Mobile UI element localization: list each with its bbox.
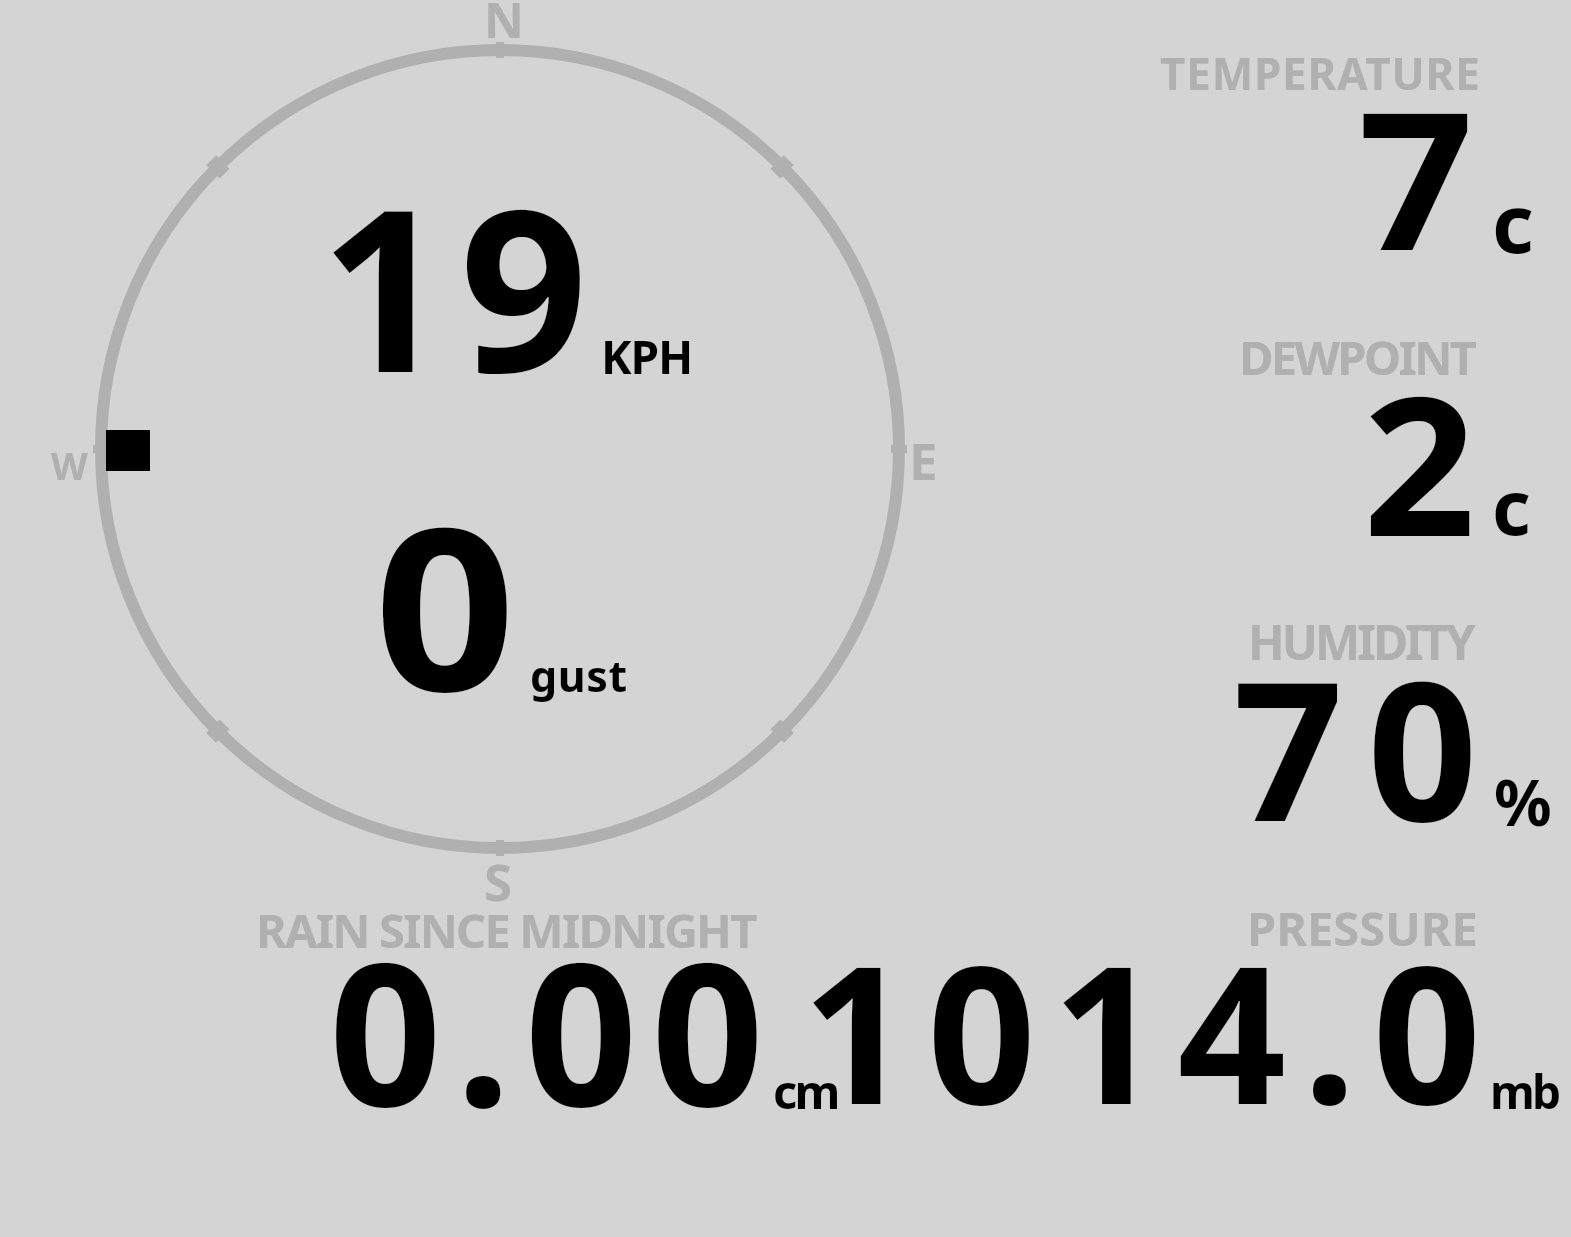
staticText: 7 <box>1358 46 1475 306</box>
staticText: 2 <box>1363 330 1476 593</box>
staticText: % <box>1494 758 1552 845</box>
staticText: 0.00 <box>329 895 778 1163</box>
staticText: DEWPOINT <box>1239 325 1475 389</box>
staticText: PRESSURE <box>1247 896 1478 960</box>
staticText: c <box>1492 455 1531 557</box>
staticText: 70 <box>1233 615 1502 878</box>
staticText: 19 <box>320 133 600 438</box>
other: Wind direction compass <box>0 0 1571 1237</box>
staticText: HUMIDITY <box>1248 609 1473 674</box>
staticText: gust <box>530 646 628 705</box>
staticText: W <box>51 439 88 491</box>
staticText: mb <box>1490 1060 1559 1123</box>
staticText: 0 <box>374 452 517 757</box>
staticText: S <box>484 846 513 915</box>
staticText: N <box>484 0 524 53</box>
staticText: 1014.0 <box>802 901 1498 1160</box>
staticText: c <box>1492 166 1534 276</box>
staticText: KPH <box>601 325 693 388</box>
staticText: TEMPERATURE <box>1160 43 1481 103</box>
staticText: cm <box>773 1059 838 1123</box>
staticText: E <box>909 425 938 494</box>
staticText: RAIN SINCE MIDNIGHT <box>256 898 756 962</box>
